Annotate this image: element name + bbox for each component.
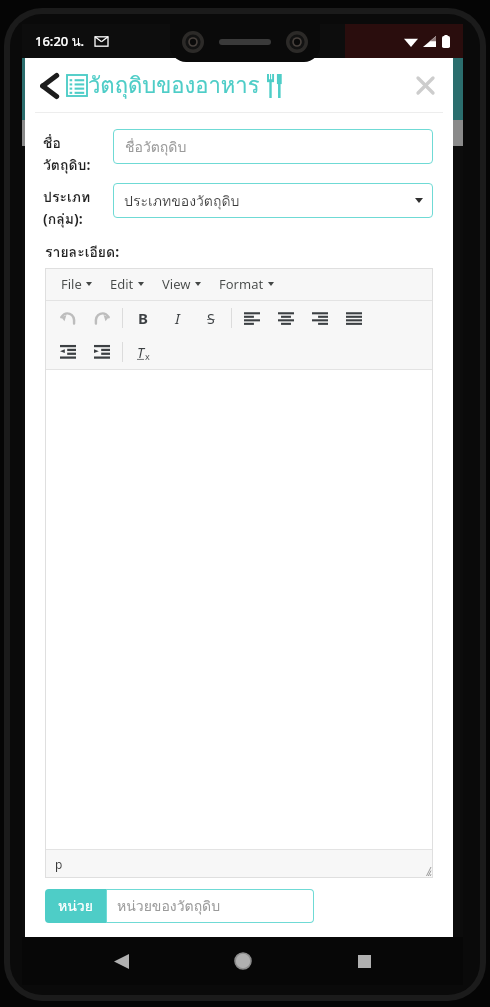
button[interactable]: Format <box>214 275 279 293</box>
button[interactable]: Edit <box>105 275 149 293</box>
button[interactable]: Justify <box>337 301 371 335</box>
button[interactable]: Recent apps <box>342 939 386 983</box>
button[interactable]: Home <box>221 939 265 983</box>
button[interactable]: Strikethrough <box>194 301 228 335</box>
button[interactable]: Clear formatting <box>126 335 160 369</box>
staticText: View <box>162 275 191 293</box>
button[interactable]: Decrease indent <box>51 335 85 369</box>
staticText: I <box>175 308 180 328</box>
button[interactable]: Increase indent <box>85 335 119 369</box>
button[interactable]: ประเภทของวัตถุดิบ <box>113 183 433 218</box>
button[interactable]: ชื่อวัตถุดิบ <box>113 129 433 164</box>
staticText: รายละเอียด: <box>45 241 120 263</box>
staticText: วัตถุดิบ: <box>43 154 91 176</box>
staticText: Edit <box>110 275 134 293</box>
staticText: File <box>61 275 82 293</box>
button[interactable]: Redo <box>85 301 119 335</box>
button[interactable]: Align right <box>303 301 337 335</box>
button[interactable]: Italic <box>160 301 194 335</box>
staticText: ประเภทของวัตถุดิบ <box>124 190 240 212</box>
button[interactable]: File <box>56 275 97 293</box>
staticText: Format <box>219 275 264 293</box>
button[interactable]: Align left <box>235 301 269 335</box>
button[interactable]: หน่วยของวัตถุดิบ <box>106 889 314 923</box>
button[interactable]: Back <box>37 64 287 107</box>
staticText: หน่วย <box>58 895 93 917</box>
button[interactable]: Bold <box>126 301 160 335</box>
staticText: p <box>55 856 63 872</box>
staticText: B <box>138 308 148 328</box>
staticText: T <box>137 343 145 362</box>
button[interactable]: Align center <box>269 301 303 335</box>
staticText: ชื่อวัตถุดิบ <box>125 136 187 158</box>
staticText: (กลุ่ม): <box>43 208 83 230</box>
button[interactable]: Undo <box>51 301 85 335</box>
button[interactable]: View <box>157 275 206 293</box>
button[interactable]: Back <box>99 939 143 983</box>
staticText: x <box>145 350 150 362</box>
staticText: วัตถุดิบของอาหาร <box>88 68 260 103</box>
other: Back <box>41 74 58 98</box>
staticText: ชื่อ <box>43 132 61 154</box>
button[interactable]: หน่วย <box>45 889 106 923</box>
staticText: หน่วยของวัตถุดิบ <box>117 895 221 917</box>
staticText: ประเภท <box>43 186 91 208</box>
button[interactable]: Close <box>412 72 439 99</box>
staticText: 16:20 น. <box>35 31 85 52</box>
staticText: S <box>207 309 215 328</box>
